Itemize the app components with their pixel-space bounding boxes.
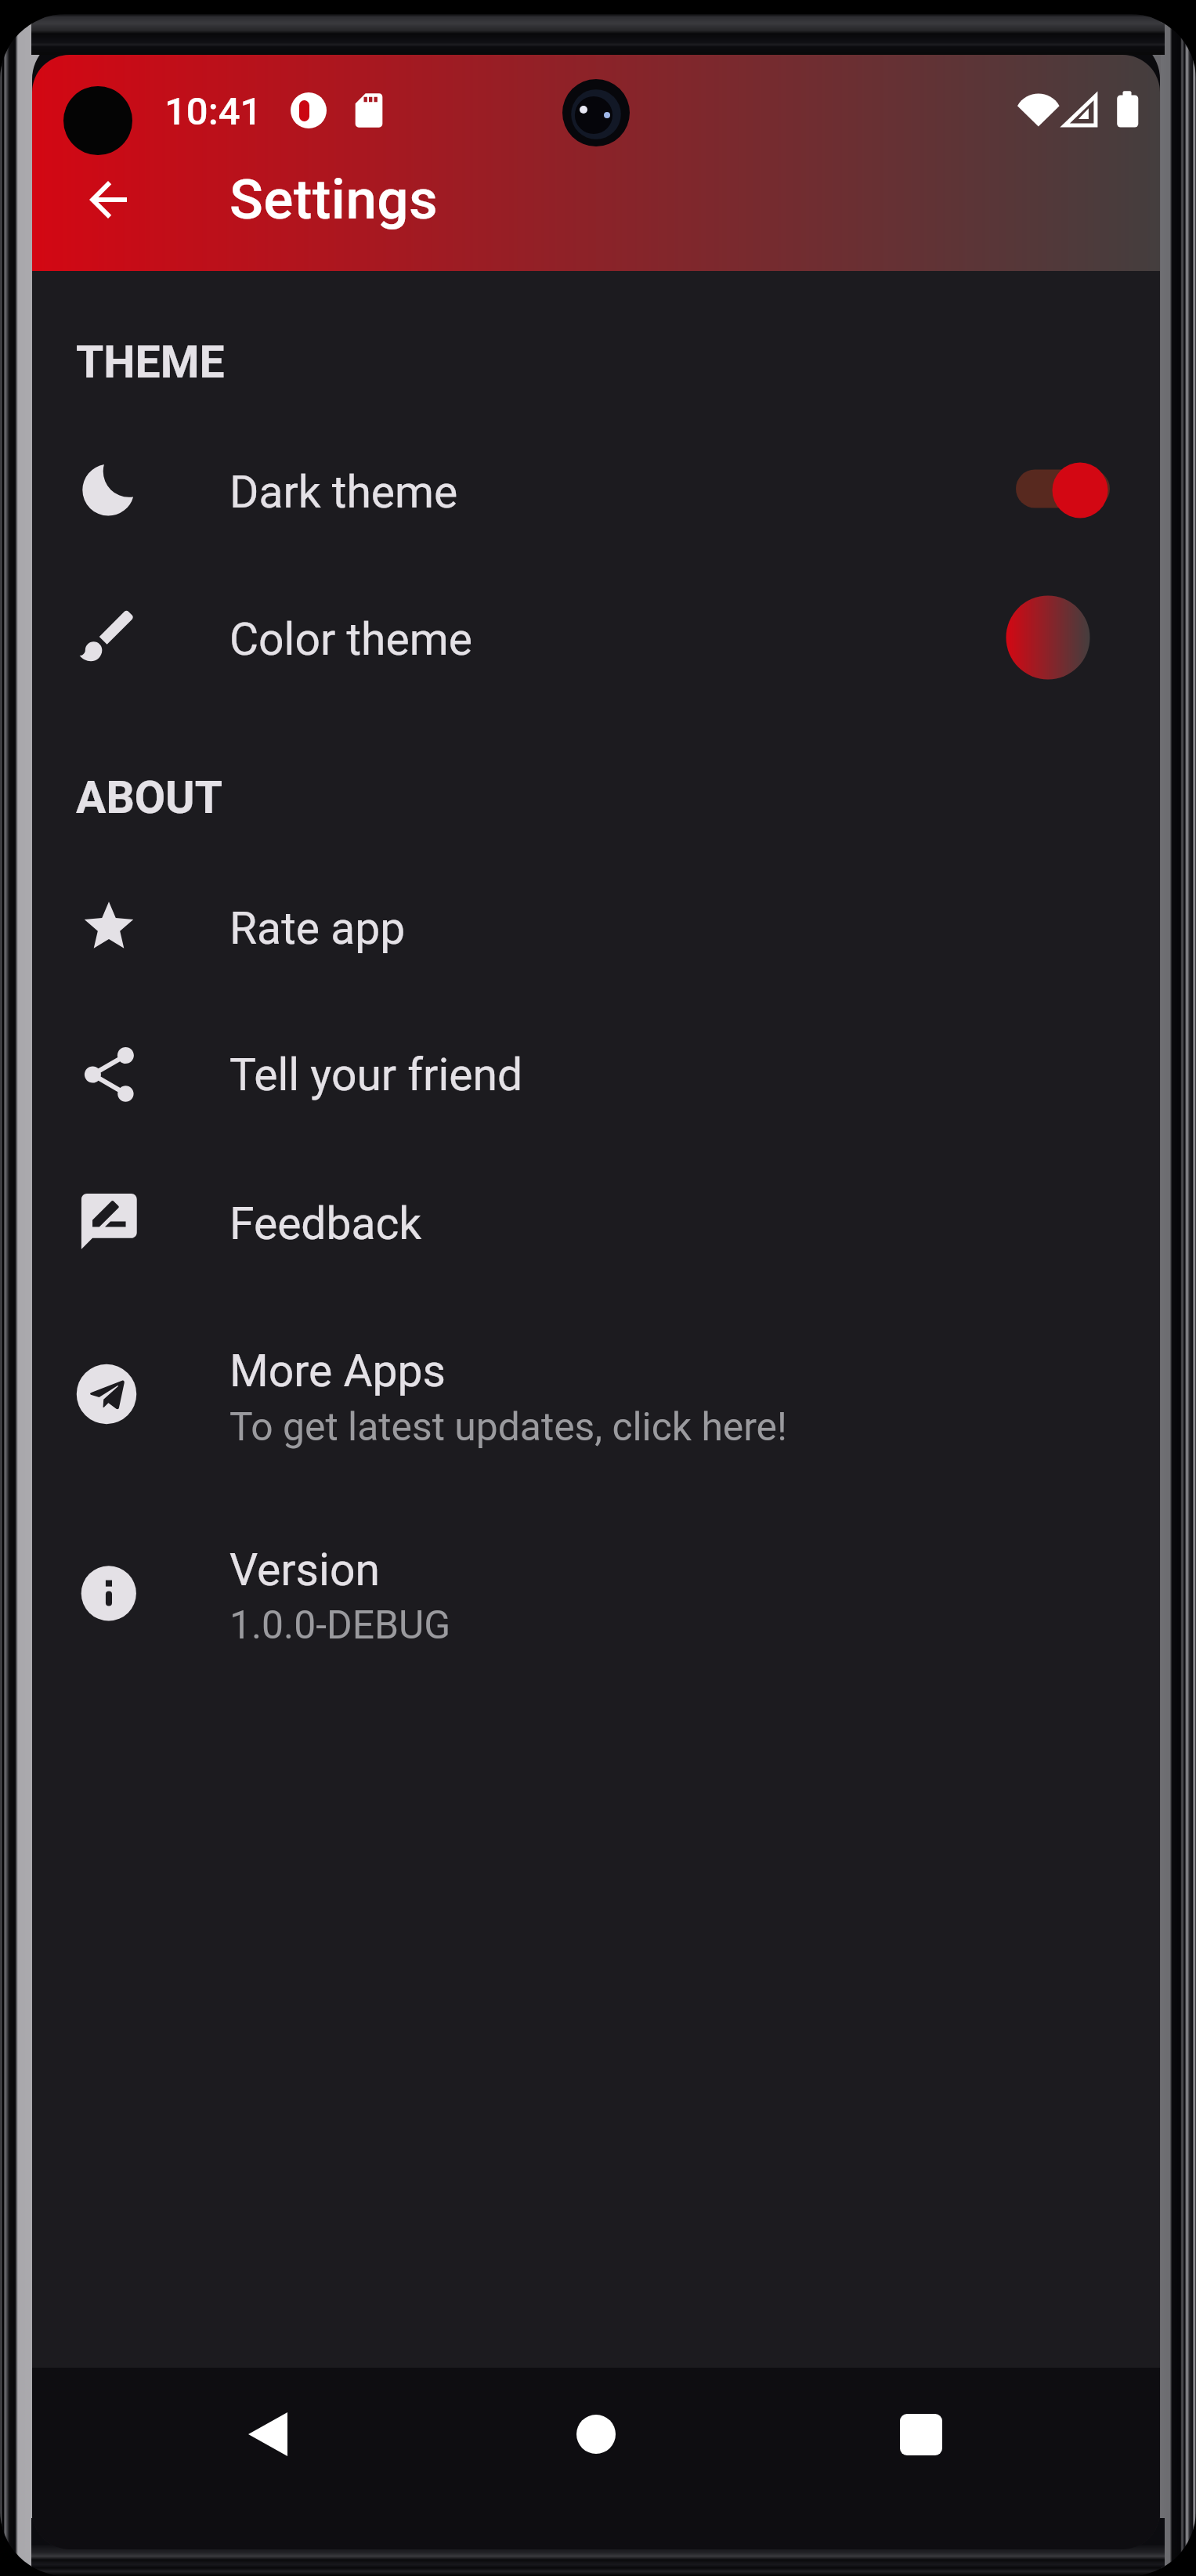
staticText: 1.0.0-DEBUG: [229, 1602, 451, 1648]
button[interactable]: [32, 566, 1160, 712]
staticText: Version: [229, 1544, 380, 1596]
button[interactable]: Home: [557, 2395, 635, 2473]
button[interactable]: Back: [229, 2395, 307, 2473]
staticText: Settings: [229, 167, 439, 232]
staticText: THEME: [76, 336, 225, 388]
button[interactable]: [32, 1002, 1160, 1147]
staticText: 10:41: [164, 89, 262, 134]
staticText: Rate app: [229, 902, 406, 955]
staticText: To get latest updates, click here!: [229, 1404, 787, 1450]
staticText: Tell your friend: [229, 1049, 523, 1101]
button[interactable]: [32, 1497, 1160, 1697]
button[interactable]: [32, 1151, 1160, 1296]
staticText: Color theme: [229, 613, 472, 666]
staticText: Feedback: [229, 1198, 422, 1250]
staticText: ABOUT: [76, 771, 222, 824]
button[interactable]: [32, 419, 1160, 565]
staticText: Dark theme: [229, 466, 458, 518]
button[interactable]: Navigate up: [60, 151, 157, 248]
button[interactable]: Recent apps: [882, 2395, 960, 2473]
button[interactable]: [32, 855, 1160, 1001]
staticText: More Apps: [229, 1345, 446, 1397]
button[interactable]: [32, 1298, 1160, 1498]
